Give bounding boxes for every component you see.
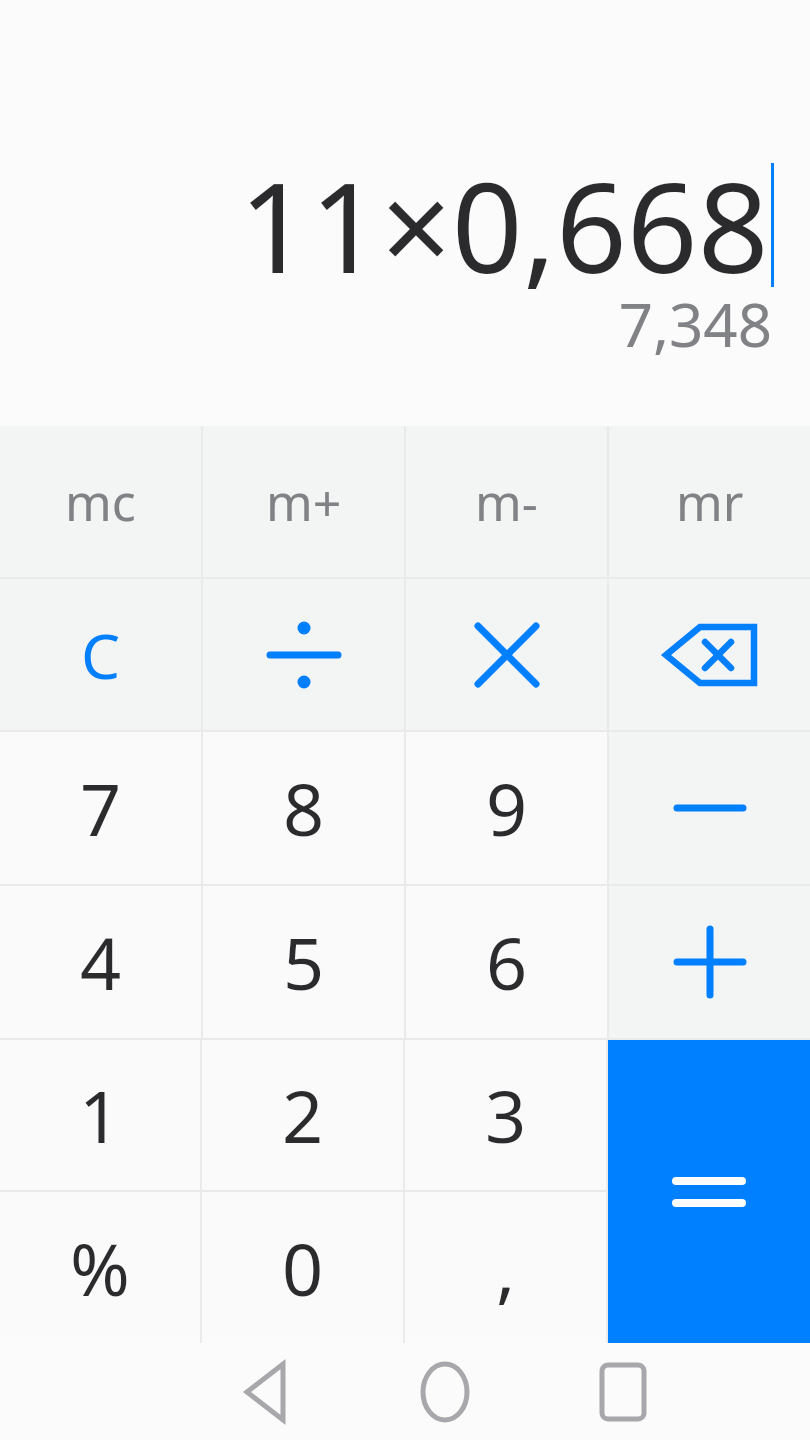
staticText: mr [676,468,744,536]
button[interactable]: Recents [534,1343,712,1440]
staticText: 7,348 [618,283,772,365]
button[interactable]: 9 [406,732,607,884]
button[interactable]: Plus [609,886,810,1038]
button[interactable]: m- [406,426,607,577]
button[interactable]: m+ [203,426,404,577]
staticText: 3 [485,1066,527,1164]
staticText: 5 [283,913,325,1011]
staticText: 4 [80,913,122,1011]
button[interactable]: 5 [203,886,404,1038]
staticText: 7 [80,759,122,857]
button[interactable]: % [0,1192,200,1343]
staticText: 9 [486,759,528,857]
button[interactable]: 6 [406,886,607,1038]
staticText: 8 [283,759,325,857]
staticText: mc [65,468,136,536]
button[interactable]: 0 [202,1192,403,1343]
staticText: C [81,613,121,697]
button[interactable]: 1 [0,1040,200,1190]
staticText: 6 [486,913,528,1011]
button[interactable]: Divide [203,579,404,730]
button[interactable]: Equals [608,1040,810,1343]
staticText: 0 [282,1219,324,1317]
button[interactable]: 3 [405,1040,606,1190]
button[interactable]: Back [178,1343,356,1440]
staticText: , [496,1219,516,1317]
button[interactable]: Home [356,1343,534,1440]
button[interactable]: 2 [202,1040,403,1190]
button[interactable]: C [0,579,201,730]
staticText: 1 [79,1066,121,1164]
staticText: 2 [282,1066,324,1164]
staticText: m+ [266,468,342,536]
staticText: 11×0,668 [239,140,769,309]
button[interactable]: Minus [609,732,810,884]
button[interactable]: 7 [0,732,201,884]
button[interactable]: , [405,1192,606,1343]
button[interactable]: mc [0,426,201,577]
button[interactable]: 4 [0,886,201,1038]
staticText: % [70,1219,130,1317]
button[interactable]: mr [609,426,810,577]
button[interactable]: Multiply [406,579,607,730]
staticText: m- [475,468,538,536]
button[interactable]: Backspace [609,579,810,730]
button[interactable]: 8 [203,732,404,884]
